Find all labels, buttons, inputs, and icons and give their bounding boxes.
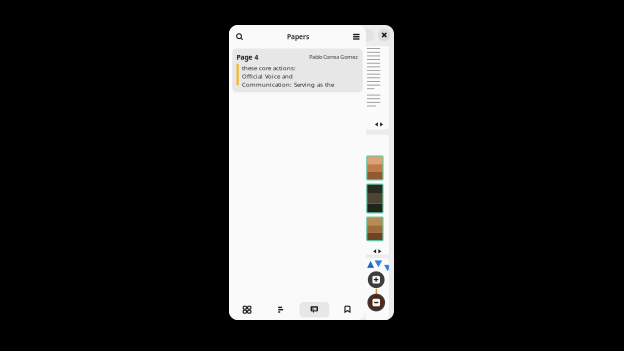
- button[interactable]: Outline: [266, 302, 295, 317]
- button[interactable]: Bookmarks: [333, 302, 363, 317]
- button[interactable]: Menu: [346, 26, 367, 47]
- staticText: Pablo Correa Gomez: [309, 53, 358, 61]
- button[interactable]: Library: [232, 302, 262, 317]
- staticText: Official Voice and: [242, 72, 293, 80]
- staticText: these core actions:: [242, 64, 296, 72]
- button[interactable]: Search: [229, 26, 250, 47]
- staticText: Page 4: [237, 52, 259, 62]
- staticText: Communication: Serving as the: [242, 80, 334, 89]
- staticText: Papers: [287, 32, 309, 41]
- button[interactable]: Annotations: [299, 302, 329, 317]
